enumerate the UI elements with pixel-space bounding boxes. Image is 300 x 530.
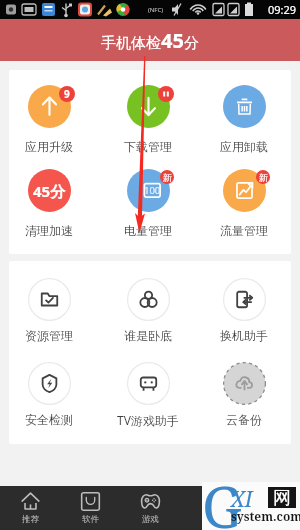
button[interactable]: 谁是卧底 [111,278,185,343]
staticText: 应用 [202,514,219,525]
staticText: 45分 [33,181,66,201]
button[interactable]: 资源管理 [12,278,86,343]
staticText: 网 [273,487,291,508]
staticText: 流量管理 [220,223,268,238]
staticText: 新 [259,172,268,183]
staticText: 安全检测 [25,412,73,427]
staticText: (NFC) [148,6,164,14]
staticText: 新 [163,172,172,183]
staticText: 手机体检 [101,34,161,53]
staticText: G [202,468,242,530]
button[interactable]: 手机体检 [0,19,300,61]
staticText: system.com [231,508,300,524]
staticText: 推荐 [22,514,39,525]
button[interactable]: TV游戏助手 [111,362,185,428]
staticText: 9 [64,87,70,101]
staticText: XI [231,485,253,514]
staticText: 谁是卧底 [124,328,172,343]
button[interactable]: 云备份 [207,362,281,427]
button[interactable]: 软件 [60,486,120,530]
button[interactable]: 新 [207,169,281,238]
staticText: 分 [184,34,199,53]
staticText: 换机助手 [220,328,268,343]
staticText: 09:29 [268,2,297,17]
staticText: 电量管理 [124,223,172,238]
button[interactable]: 应用卸载 [207,85,281,154]
button[interactable]: 推荐 [0,486,60,530]
button[interactable]: 100 [111,169,185,238]
staticText: 云备份 [226,412,262,427]
staticText: 游戏 [142,514,159,525]
staticText: 应用升级 [25,139,73,154]
staticText: 应用卸载 [220,139,268,154]
staticText: 资源管理 [25,328,73,343]
button[interactable]: 应用 [180,486,240,530]
staticText: 45 [161,27,184,54]
button[interactable]: 游戏 [120,486,180,530]
staticText: 清理加速 [25,223,73,238]
staticText: 管理 [262,514,279,525]
button[interactable]: 45分 [12,169,86,238]
button[interactable]: 管理 [240,486,300,530]
staticText: 软件 [82,514,99,525]
button[interactable]: 下载管理 [111,85,185,154]
staticText: TV游戏助手 [117,412,179,428]
button[interactable]: 换机助手 [207,278,281,343]
button[interactable]: 9 [12,85,86,154]
staticText: 100 [144,184,161,197]
staticText: 下载管理 [124,139,172,154]
button[interactable]: 安全检测 [12,362,86,427]
